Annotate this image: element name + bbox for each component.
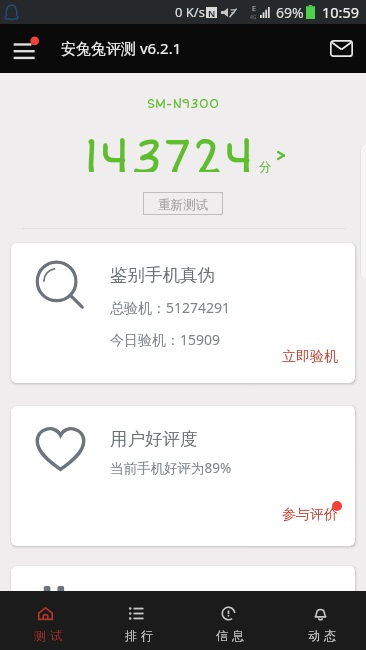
staticText: 鉴别手机真伪 xyxy=(110,264,215,286)
button[interactable]: 动态 xyxy=(274,591,366,650)
staticText: 用户好评度 xyxy=(110,428,198,450)
button[interactable]: 排行 xyxy=(91,591,182,650)
staticText: 动态 xyxy=(306,628,338,643)
staticText: 安兔兔评测 v6.2.1 xyxy=(61,38,182,58)
staticText: 143724 xyxy=(83,126,255,172)
button[interactable]: Open navigation menu xyxy=(0,24,50,73)
button[interactable]: 信息 xyxy=(182,591,274,650)
staticText: 排行 xyxy=(123,628,155,643)
staticText: 0 K/s xyxy=(175,3,205,21)
staticText: 当前手机好评为89% xyxy=(110,459,232,477)
staticText: SM-N9300 xyxy=(0,96,366,112)
staticText: 69% xyxy=(276,3,304,22)
staticText: 今日验机：15909 xyxy=(110,330,221,349)
button[interactable]: 测试 xyxy=(0,591,91,650)
staticText: 10:59 xyxy=(322,2,360,22)
staticText: 信息 xyxy=(214,628,246,643)
staticText: 测试 xyxy=(32,628,64,643)
button[interactable]: 参与评价 xyxy=(272,500,348,530)
staticText: 分 xyxy=(259,159,272,175)
staticText: 4G xyxy=(250,14,257,21)
button[interactable] xyxy=(11,566,355,650)
button[interactable]: 用户好评度 xyxy=(11,406,355,546)
button[interactable]: 立即验机 xyxy=(272,342,348,372)
staticText: N xyxy=(208,7,216,18)
button[interactable]: Messages xyxy=(316,24,366,73)
button[interactable]: 重新测试 xyxy=(143,192,223,215)
button[interactable]: 鉴别手机真伪 xyxy=(11,243,355,383)
staticText: 立即验机 xyxy=(282,348,338,366)
staticText: E xyxy=(252,4,256,14)
staticText: 参与评价 xyxy=(282,506,338,524)
staticText: 重新测试 xyxy=(158,197,208,213)
staticText: 总验机：51274291 xyxy=(110,298,231,317)
